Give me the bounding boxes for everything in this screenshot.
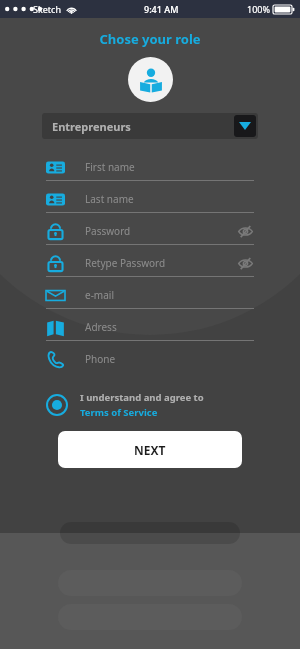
button[interactable]: Entrepreneurs [42, 113, 258, 139]
staticText: Sketch [33, 3, 61, 15]
button[interactable]: Phone [46, 346, 254, 372]
button[interactable]: Show password [237, 223, 254, 240]
button[interactable]: Adress [46, 314, 254, 340]
button[interactable]: Role avatar [128, 57, 173, 102]
staticText: Adress [85, 320, 254, 334]
button[interactable]: e-mail [46, 282, 254, 308]
button[interactable]: Show password [237, 255, 254, 272]
button[interactable]: I understand and agree to [46, 391, 254, 419]
staticText: Password [85, 224, 237, 238]
staticText: Entrepreneurs [52, 119, 232, 134]
button[interactable]: Password [46, 218, 254, 244]
staticText: 9:41 AM [144, 3, 179, 15]
staticText: NEXT [134, 442, 166, 458]
button[interactable]: Terms of Service [80, 406, 158, 419]
staticText: I understand and agree to [80, 391, 204, 404]
staticText: Last name [85, 192, 254, 206]
staticText: Phone [85, 352, 254, 366]
button[interactable]: Retype Password [46, 250, 254, 276]
staticText: 100% [247, 3, 270, 15]
button[interactable]: First name [46, 154, 254, 180]
button[interactable]: NEXT [58, 431, 242, 468]
staticText: First name [85, 160, 254, 174]
button[interactable]: Last name [46, 186, 254, 212]
staticText: e-mail [85, 288, 254, 302]
staticText: Chose your role [0, 30, 300, 48]
staticText: Retype Password [85, 256, 237, 270]
